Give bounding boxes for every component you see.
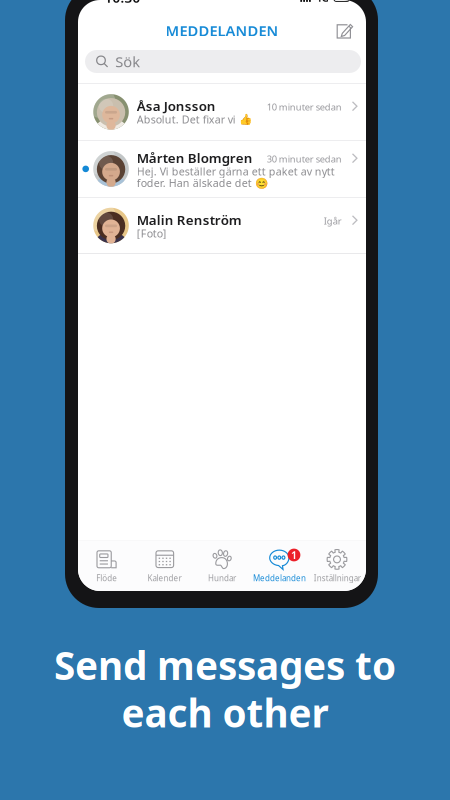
- staticText: Mårten Blomgren: [137, 149, 253, 167]
- staticText: [Foto]: [137, 226, 167, 240]
- staticText: 10:30: [104, 0, 140, 6]
- staticText: Kalender: [147, 573, 181, 583]
- staticText: Absolut. Det fixar vi 👍: [137, 112, 252, 126]
- staticText: Send messages to: [54, 639, 396, 691]
- staticText: Hej. Vi beställer gärna ett paket av nyt…: [137, 164, 335, 178]
- staticText: Inställningar: [314, 573, 361, 583]
- staticText: MEDDELANDEN: [165, 21, 278, 40]
- staticText: Meddelanden: [253, 573, 306, 583]
- staticText: 30 minuter sedan: [267, 153, 342, 165]
- staticText: 1: [291, 548, 297, 562]
- button[interactable]: Inställningar: [308, 550, 366, 590]
- staticText: 4G: [315, 0, 329, 5]
- button[interactable]: Mårten Blomgren: [78, 141, 366, 197]
- button[interactable]: Malin Renström: [78, 198, 366, 253]
- button[interactable]: Flöde: [78, 550, 136, 590]
- button[interactable]: New message: [331, 16, 359, 44]
- staticText: foder. Han älskade det 😊: [137, 176, 268, 190]
- staticText: 10 minuter sedan: [267, 101, 342, 113]
- button[interactable]: 1: [251, 550, 308, 590]
- staticText: Åsa Jonsson: [137, 97, 216, 115]
- staticText: Malin Renström: [137, 211, 242, 229]
- button[interactable]: Kalender: [136, 550, 193, 590]
- button[interactable]: Åsa Jonsson: [78, 84, 366, 140]
- staticText: each other: [121, 687, 328, 738]
- staticText: Sök: [115, 52, 140, 71]
- button[interactable]: Hundar: [193, 550, 251, 590]
- staticText: Flöde: [96, 573, 117, 583]
- staticText: Hundar: [208, 573, 236, 583]
- button[interactable]: Sök: [85, 50, 361, 73]
- staticText: Igår: [324, 215, 342, 227]
